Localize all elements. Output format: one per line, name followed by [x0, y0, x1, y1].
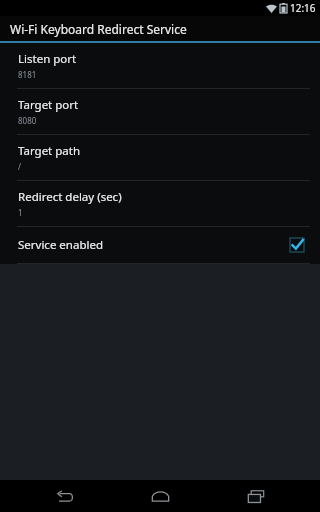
staticText: Service enabled — [18, 237, 290, 253]
button[interactable]: Service enabled — [0, 227, 320, 263]
button[interactable]: Redirect delay (sec) — [0, 181, 320, 226]
staticText: Target path — [18, 143, 81, 159]
button[interactable]: Target path — [0, 135, 320, 180]
staticText: 12:16 — [290, 1, 316, 15]
other: Service enabled toggle — [290, 238, 304, 252]
staticText: 1 — [18, 207, 23, 218]
button[interactable]: Recent apps — [224, 480, 288, 512]
button[interactable]: Home — [128, 480, 192, 512]
staticText: / — [18, 161, 21, 172]
staticText: 8181 — [18, 69, 37, 80]
button[interactable]: Listen port — [0, 43, 320, 88]
button[interactable]: Back — [32, 480, 96, 512]
staticText: 8080 — [18, 115, 37, 126]
staticText: Redirect delay (sec) — [18, 189, 122, 205]
staticText: Target port — [18, 97, 79, 113]
button[interactable]: Target port — [0, 89, 320, 134]
staticText: Wi-Fi Keyboard Redirect Service — [10, 21, 187, 37]
staticText: Listen port — [18, 51, 77, 67]
